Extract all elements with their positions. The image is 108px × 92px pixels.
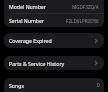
- button[interactable]: Parts & Service History: [4, 56, 104, 70]
- staticText: MGDF3ZQ/A: [72, 4, 99, 10]
- staticText: Songs: [9, 82, 24, 89]
- button[interactable]: Songs: [4, 78, 104, 92]
- staticText: Serial Number: [9, 17, 45, 24]
- other: Coverage details: [92, 37, 100, 45]
- other: Parts and service history: [92, 59, 100, 67]
- button[interactable]: Coverage Expired: [4, 33, 104, 48]
- staticText: Coverage Expired: [9, 37, 52, 44]
- staticText: 0: [97, 82, 100, 88]
- button[interactable]: Model Number: [4, 0, 104, 13]
- button[interactable]: Serial Number: [4, 14, 104, 27]
- staticText: F2LDVLPK0D56: [66, 18, 99, 24]
- staticText: Parts & Service History: [9, 60, 65, 67]
- staticText: Model Number: [9, 3, 46, 10]
